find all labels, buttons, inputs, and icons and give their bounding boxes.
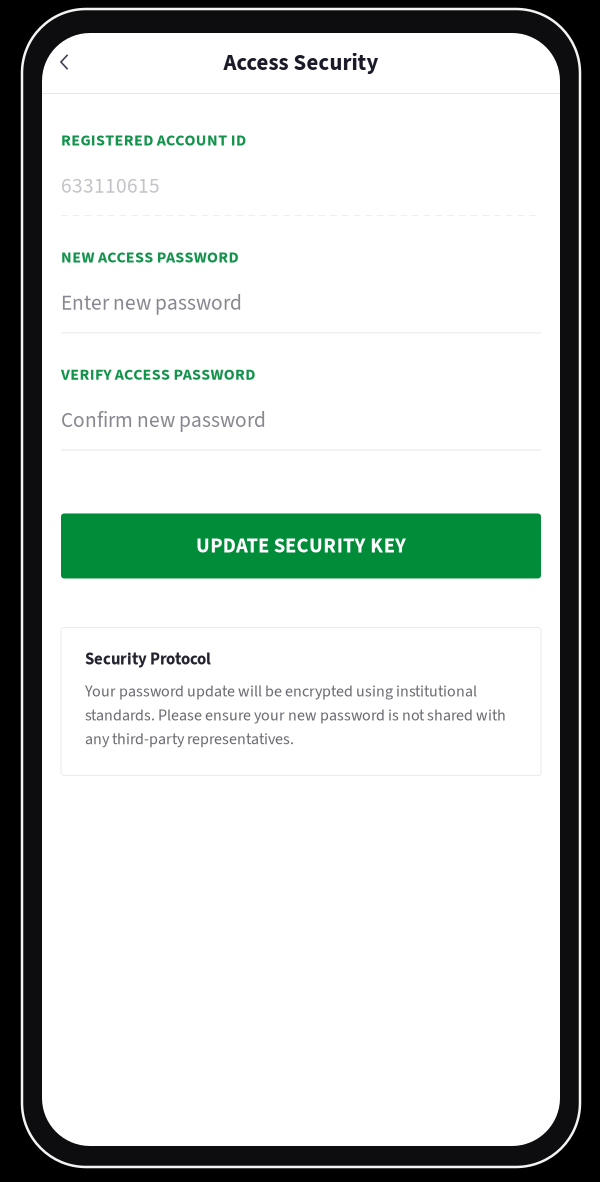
staticText: Confirm new password xyxy=(61,405,266,435)
staticText: UPDATE SECURITY KEY xyxy=(196,531,406,561)
staticText: VERIFY ACCESS PASSWORD xyxy=(61,363,255,386)
staticText: NEW ACCESS PASSWORD xyxy=(61,246,238,269)
staticText: Enter new password xyxy=(61,288,242,318)
staticText: Security Protocol xyxy=(85,647,211,671)
button[interactable]: Back xyxy=(42,42,86,84)
staticText: Your password update will be encrypted u… xyxy=(85,680,506,751)
staticText: 633110615 xyxy=(61,171,160,201)
button[interactable]: UPDATE SECURITY KEY xyxy=(61,513,541,578)
staticText: Access Security xyxy=(223,47,378,79)
staticText: REGISTERED ACCOUNT ID xyxy=(61,129,246,152)
